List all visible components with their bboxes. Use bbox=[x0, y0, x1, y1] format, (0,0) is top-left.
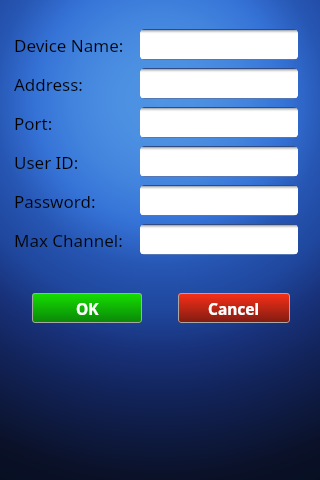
button[interactable] bbox=[140, 186, 298, 215]
staticText: Cancel bbox=[208, 298, 260, 319]
button[interactable] bbox=[140, 147, 298, 176]
button[interactable] bbox=[140, 108, 298, 137]
staticText: User ID: bbox=[14, 151, 79, 174]
button[interactable]: OK bbox=[32, 293, 142, 323]
staticText: Port: bbox=[14, 112, 53, 135]
button[interactable]: Cancel bbox=[178, 293, 290, 323]
button[interactable] bbox=[140, 30, 298, 59]
staticText: Device Name: bbox=[14, 34, 124, 57]
staticText: Max Channel: bbox=[14, 229, 123, 252]
button[interactable] bbox=[140, 69, 298, 98]
button[interactable] bbox=[140, 225, 298, 254]
staticText: Password: bbox=[14, 190, 96, 213]
staticText: OK bbox=[76, 298, 99, 319]
staticText: Address: bbox=[14, 73, 83, 96]
